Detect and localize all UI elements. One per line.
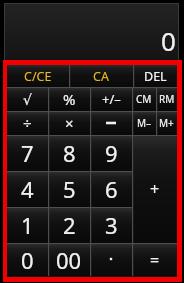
staticText: 0 <box>21 245 34 275</box>
button[interactable]: Multiply <box>48 111 90 135</box>
staticText: 9 <box>105 138 118 168</box>
staticText: CM <box>136 92 152 106</box>
staticText: C/CE <box>24 68 52 85</box>
button[interactable]: 2 <box>48 207 90 243</box>
staticText: 2 <box>63 210 76 240</box>
staticText: 7 <box>21 138 34 168</box>
staticText: RM <box>159 92 175 106</box>
staticText: 00 <box>56 245 82 275</box>
button[interactable]: 7 <box>7 135 48 171</box>
button[interactable]: Minus <box>90 111 132 135</box>
button[interactable]: RM <box>156 87 177 111</box>
staticText: ÷ <box>23 113 32 133</box>
staticText: 8 <box>63 138 76 168</box>
staticText: +/– <box>102 90 121 108</box>
button[interactable]: 0 <box>7 243 48 276</box>
staticText: 4 <box>21 174 34 204</box>
button[interactable]: DEL <box>133 65 177 88</box>
staticText: × <box>65 113 74 133</box>
button[interactable]: Plus <box>132 135 177 243</box>
staticText: 5 <box>63 174 76 204</box>
button[interactable]: CA <box>69 65 133 88</box>
button[interactable]: CM <box>132 87 156 111</box>
staticText: M+ <box>159 116 174 130</box>
button[interactable]: 8 <box>48 135 90 171</box>
button[interactable]: C/CE <box>7 65 69 88</box>
staticText: 3 <box>105 210 118 240</box>
staticText: √ <box>23 92 32 108</box>
button[interactable]: Decimal point <box>90 243 132 276</box>
button[interactable]: 5 <box>48 171 90 207</box>
staticText: % <box>63 89 76 109</box>
button[interactable]: M+ <box>156 111 177 135</box>
button[interactable]: 4 <box>7 171 48 207</box>
button[interactable]: Square root <box>7 87 48 111</box>
button[interactable]: Equals <box>132 243 177 276</box>
staticText: DEL <box>144 68 167 85</box>
staticText: M– <box>137 116 152 130</box>
staticText: = <box>150 249 160 271</box>
button[interactable]: 3 <box>90 207 132 243</box>
staticText: 0 <box>161 23 176 58</box>
staticText: 6 <box>105 174 118 204</box>
staticText: + <box>150 178 160 200</box>
button[interactable]: 00 <box>48 243 90 276</box>
button[interactable]: Plus minus <box>90 87 132 111</box>
staticText: 1 <box>21 210 34 240</box>
button[interactable]: % <box>48 87 90 111</box>
button[interactable]: Divide <box>7 111 48 135</box>
button[interactable]: 9 <box>90 135 132 171</box>
staticText: CA <box>93 68 109 85</box>
button[interactable]: 6 <box>90 171 132 207</box>
button[interactable]: 1 <box>7 207 48 243</box>
button[interactable]: M– <box>132 111 156 135</box>
